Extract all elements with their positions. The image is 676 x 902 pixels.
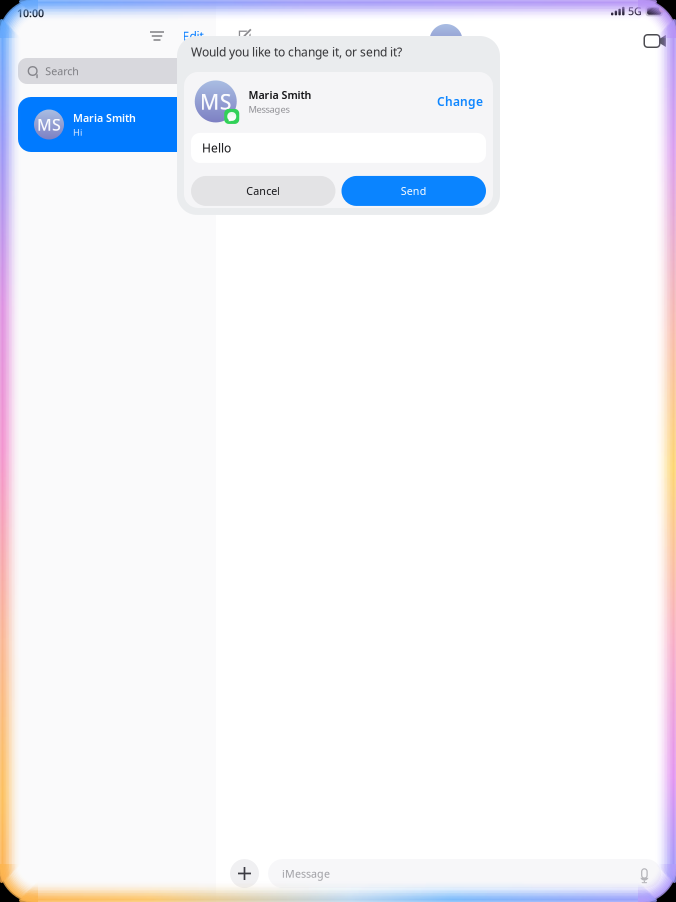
staticText: Maria Smith: [73, 111, 136, 125]
button[interactable]: Dictate: [640, 866, 649, 881]
staticText: Messages: [248, 103, 289, 115]
staticText: 5G: [628, 4, 642, 18]
button[interactable]: Edit: [178, 25, 208, 47]
staticText: Search: [45, 64, 79, 78]
staticText: MS: [200, 87, 232, 116]
staticText: Hi: [73, 126, 82, 138]
staticText: Edit: [182, 28, 203, 44]
staticText: Cancel: [246, 184, 280, 198]
staticText: 1: [181, 118, 186, 131]
button[interactable]: New message: [235, 24, 255, 46]
staticText: iMessage: [282, 866, 330, 881]
staticText: MS: [37, 114, 61, 135]
button[interactable]: Send: [341, 176, 486, 206]
button[interactable]: FaceTime: [635, 24, 669, 57]
staticText: Maria Smith: [248, 88, 311, 102]
staticText: Send: [401, 184, 427, 198]
button[interactable]: Add attachment: [230, 859, 259, 888]
staticText: 10:00: [17, 6, 44, 20]
button[interactable]: Filter conversations: [144, 25, 170, 47]
button[interactable]: Cancel: [191, 176, 335, 206]
staticText: Hello: [202, 140, 231, 156]
staticText: Change: [437, 93, 483, 109]
button[interactable]: MS: [18, 97, 198, 152]
staticText: Would you like to change it, or send it?: [191, 44, 402, 60]
button[interactable]: Change: [437, 93, 483, 109]
